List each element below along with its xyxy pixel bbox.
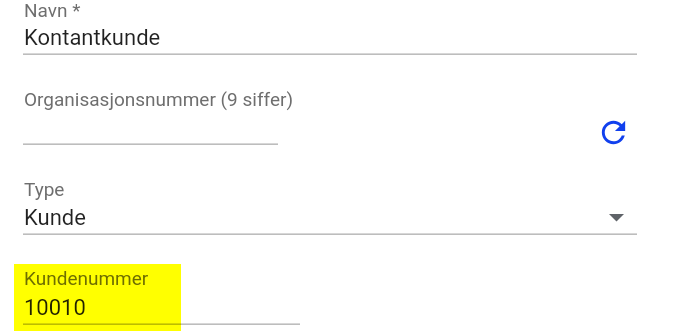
staticText: Organisasjonsnummer (9 siffer): [24, 88, 294, 110]
staticText: Navn *: [24, 0, 81, 21]
button[interactable]: Navn *: [23, 0, 637, 54]
button[interactable]: Open type dropdown: [604, 205, 630, 231]
button[interactable]: Kundenummer: [23, 270, 637, 324]
staticText: Type: [24, 178, 65, 200]
button[interactable]: Type: [23, 180, 637, 234]
staticText: 10010: [24, 295, 86, 321]
staticText: Kunde: [24, 205, 86, 231]
button[interactable]: Organisasjonsnummer (9 siffer): [23, 90, 583, 144]
button[interactable]: Refresh organisation number: [596, 115, 631, 150]
staticText: Kontantkunde: [24, 25, 161, 51]
staticText: Kundenummer: [24, 267, 149, 289]
